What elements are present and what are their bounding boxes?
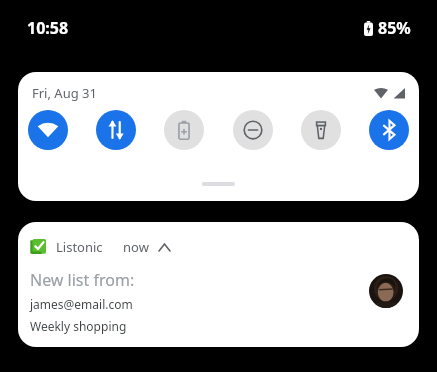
staticText: Fri, Aug 31 bbox=[32, 84, 97, 102]
other: Sender avatar bbox=[369, 274, 403, 308]
button[interactable]: Battery Saver bbox=[164, 110, 204, 150]
staticText: New list from: bbox=[30, 269, 135, 291]
staticText: 10:58 bbox=[27, 17, 69, 39]
button[interactable]: Collapse bbox=[156, 239, 172, 255]
staticText: now bbox=[123, 238, 149, 256]
staticText: james@email.com bbox=[30, 296, 133, 312]
button[interactable]: Flashlight bbox=[301, 110, 341, 150]
staticText: Listonic bbox=[56, 238, 103, 256]
staticText: Weekly shopping bbox=[30, 318, 127, 334]
button[interactable]: Listonic bbox=[18, 222, 419, 347]
button[interactable]: Mobile data bbox=[96, 110, 136, 150]
button[interactable]: Bluetooth bbox=[369, 110, 409, 150]
button[interactable]: Do Not Disturb bbox=[233, 110, 273, 150]
staticText: 85% bbox=[378, 17, 411, 39]
button[interactable]: Wi-Fi bbox=[28, 110, 68, 150]
